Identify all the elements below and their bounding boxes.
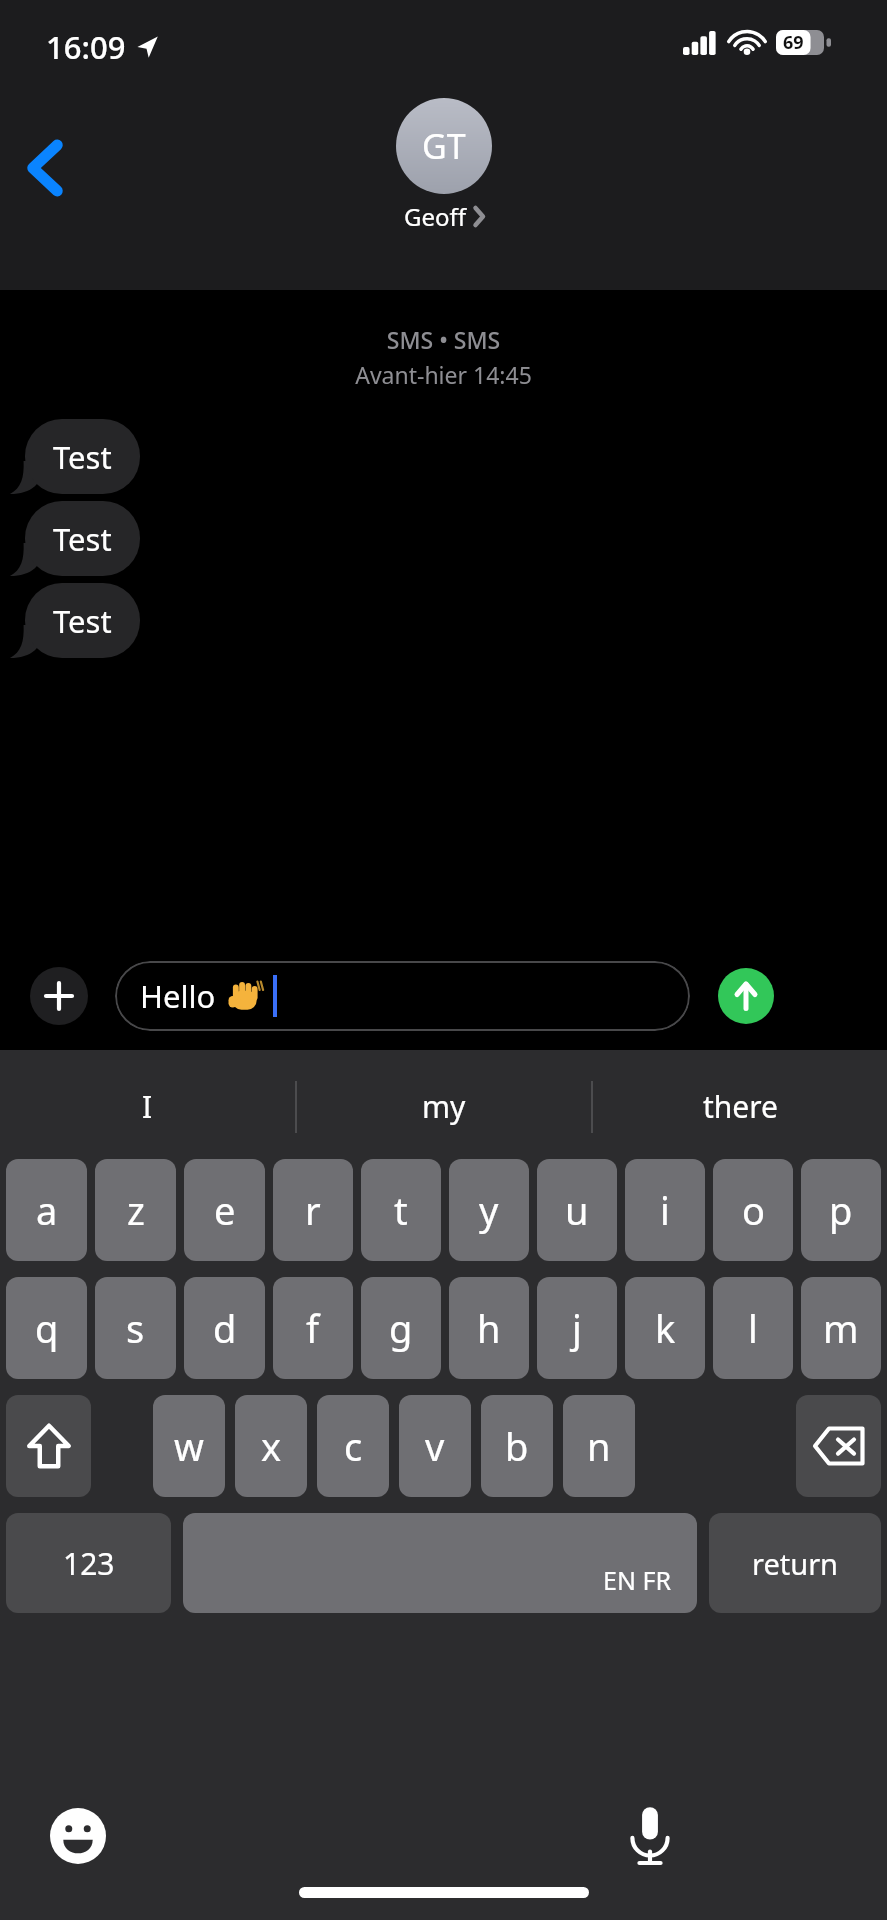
button[interactable]: Send	[718, 968, 774, 1024]
button[interactable]: i	[625, 1159, 705, 1261]
button[interactable]: o	[713, 1159, 793, 1261]
staticText: I	[142, 1086, 153, 1127]
staticText: 69	[783, 30, 804, 55]
button[interactable]: r	[273, 1159, 353, 1261]
button[interactable]: d	[184, 1277, 265, 1379]
staticText: r	[305, 1184, 321, 1236]
button[interactable]: k	[625, 1277, 705, 1379]
button[interactable]: Test	[25, 501, 140, 576]
staticText: 16:09	[46, 26, 126, 68]
button[interactable]: p	[801, 1159, 881, 1261]
button[interactable]: q	[6, 1277, 87, 1379]
staticText: w	[174, 1420, 204, 1472]
staticText: l	[748, 1302, 758, 1354]
button[interactable]: n	[563, 1395, 635, 1497]
button[interactable]: 123	[6, 1513, 171, 1613]
staticText: g	[389, 1302, 413, 1354]
button[interactable]: I	[0, 1054, 295, 1159]
button[interactable]: y	[449, 1159, 529, 1261]
staticText: 123	[63, 1543, 115, 1584]
button[interactable]: EN FR	[183, 1513, 697, 1613]
staticText: n	[587, 1420, 611, 1472]
staticText: Test	[53, 600, 112, 642]
button[interactable]: there	[593, 1054, 887, 1159]
button[interactable]: g	[361, 1277, 441, 1379]
staticText: j	[572, 1302, 582, 1354]
staticText: b	[505, 1420, 529, 1472]
staticText: e	[214, 1184, 236, 1236]
button[interactable]: Key	[796, 1395, 881, 1497]
button[interactable]: s	[95, 1277, 176, 1379]
button[interactable]: j	[537, 1277, 617, 1379]
button[interactable]: Test	[25, 583, 140, 658]
button[interactable]: u	[537, 1159, 617, 1261]
staticText: Test	[53, 436, 112, 478]
staticText: SMS • SMS	[0, 324, 887, 355]
button[interactable]: Emoji	[42, 1800, 114, 1872]
button[interactable]: Dictation	[614, 1800, 686, 1872]
staticText: c	[344, 1420, 363, 1472]
staticText: h	[477, 1302, 501, 1354]
button[interactable]: a	[6, 1159, 87, 1261]
button[interactable]: h	[449, 1277, 529, 1379]
button[interactable]: f	[273, 1277, 353, 1379]
button[interactable]: Test	[25, 419, 140, 494]
staticText: EN FR	[603, 1563, 671, 1597]
button[interactable]: b	[481, 1395, 553, 1497]
button[interactable]: t	[361, 1159, 441, 1261]
button[interactable]: c	[317, 1395, 389, 1497]
staticText: Geoff	[404, 200, 467, 233]
button[interactable]: return	[709, 1513, 881, 1613]
staticText: t	[394, 1184, 408, 1236]
button[interactable]: z	[95, 1159, 176, 1261]
staticText: u	[565, 1184, 589, 1236]
staticText: y	[479, 1184, 499, 1236]
staticText: i	[660, 1184, 670, 1236]
staticText: v	[425, 1420, 445, 1472]
staticText: x	[261, 1420, 282, 1472]
staticText: o	[742, 1184, 765, 1236]
staticText: z	[127, 1184, 145, 1236]
staticText: s	[126, 1302, 145, 1354]
staticText: p	[829, 1184, 853, 1236]
button[interactable]: Back	[14, 128, 76, 208]
staticText: k	[655, 1302, 676, 1354]
button[interactable]: Key	[6, 1395, 91, 1497]
button[interactable]: e	[184, 1159, 265, 1261]
staticText: Avant-hier 14:45	[0, 359, 887, 390]
staticText: d	[213, 1302, 237, 1354]
staticText: my	[422, 1086, 466, 1127]
staticText: there	[703, 1086, 778, 1127]
button[interactable]: x	[235, 1395, 307, 1497]
staticText: q	[35, 1302, 59, 1354]
button[interactable]: v	[399, 1395, 471, 1497]
button[interactable]: Add attachment	[30, 967, 88, 1025]
button[interactable]: my	[297, 1054, 591, 1159]
staticText: Hello	[140, 975, 216, 1017]
button[interactable]: m	[801, 1277, 881, 1379]
staticText: GT	[422, 123, 466, 169]
button[interactable]: Hello	[115, 961, 690, 1031]
staticText: a	[36, 1184, 58, 1236]
staticText: f	[306, 1302, 320, 1354]
button[interactable]: w	[153, 1395, 225, 1497]
staticText: m	[823, 1302, 859, 1354]
button[interactable]: l	[713, 1277, 793, 1379]
button[interactable]: GT	[0, 98, 887, 233]
staticText: return	[752, 1544, 839, 1583]
staticText: Test	[53, 518, 112, 560]
